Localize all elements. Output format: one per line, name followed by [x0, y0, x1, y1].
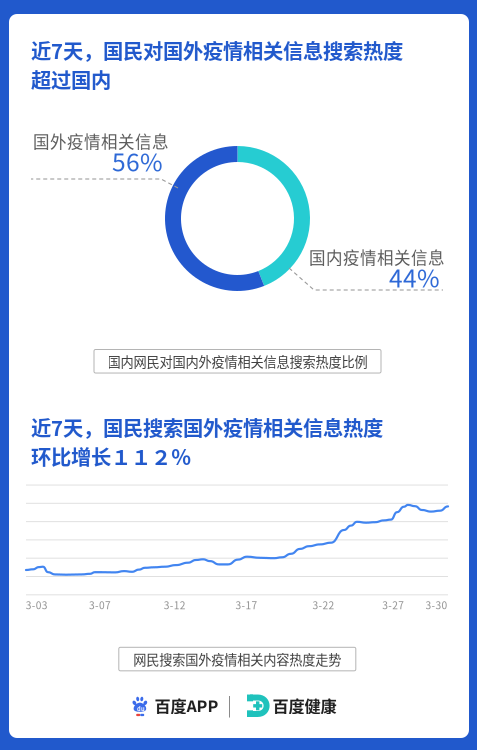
staticText: 环比增长１１２％ [31, 441, 191, 471]
staticText: 超过国内 [31, 64, 111, 94]
staticText: 44% [389, 259, 440, 294]
staticText: 网民搜索国外疫情相关内容热度走势 [133, 649, 341, 669]
staticText: 百度APP [154, 694, 218, 717]
staticText: 国外疫情相关信息 [33, 129, 169, 153]
staticText: 近7天，国民对国外疫情相关信息搜索热度 [31, 35, 403, 65]
staticText: 3-12 [164, 597, 186, 612]
button[interactable]: du [134, 695, 218, 719]
staticText: 百度健康 [272, 694, 336, 717]
staticText: 3-22 [312, 597, 334, 612]
staticText: 国内疫情相关信息 [309, 245, 445, 269]
staticText: 3-07 [89, 597, 111, 612]
staticText: 3-27 [382, 597, 404, 612]
staticText: 近7天，国民搜索国外疫情相关信息热度 [31, 412, 383, 442]
button[interactable]: 百度健康 [247, 695, 339, 719]
staticText: 56% [112, 143, 163, 178]
staticText: 3-03 [26, 597, 48, 612]
staticText: 3-17 [235, 597, 257, 612]
staticText: 国内网民对国内外疫情相关信息搜索热度比例 [107, 352, 367, 371]
staticText: du [137, 705, 145, 713]
staticText: 3-30 [426, 597, 448, 612]
